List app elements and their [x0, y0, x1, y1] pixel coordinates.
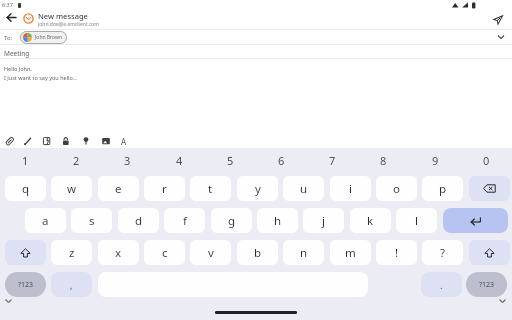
button[interactable] — [469, 240, 510, 265]
button[interactable]: 2 — [51, 150, 102, 170]
button[interactable]: o — [376, 176, 417, 201]
staticText: f — [183, 213, 187, 229]
button[interactable]: 0 — [461, 150, 512, 170]
button[interactable]: z — [51, 240, 92, 265]
staticText: v — [208, 245, 214, 261]
button[interactable]: t — [190, 176, 231, 201]
staticText: , — [70, 279, 73, 291]
button[interactable] — [469, 176, 510, 201]
staticText: w — [67, 181, 77, 197]
button[interactable]: 3 — [102, 150, 153, 170]
staticText: m — [345, 245, 356, 261]
staticText: To: — [4, 34, 13, 42]
button[interactable]: l — [396, 208, 437, 233]
staticText: 9 — [432, 153, 439, 168]
button[interactable]: n — [283, 240, 324, 265]
staticText: New message — [38, 11, 88, 21]
staticText: k — [367, 213, 374, 229]
button[interactable] — [40, 134, 54, 148]
button[interactable]: ?123 — [466, 272, 507, 297]
staticText: x — [115, 245, 122, 261]
staticText: A — [121, 136, 127, 147]
button[interactable] — [59, 134, 73, 148]
staticText: j — [322, 213, 325, 229]
button[interactable]: q — [5, 176, 46, 201]
button[interactable]: A — [117, 134, 131, 148]
button[interactable]: i — [330, 176, 371, 201]
button[interactable] — [2, 9, 22, 26]
button[interactable] — [79, 134, 93, 148]
button[interactable]: ! — [376, 240, 417, 265]
staticText: 0 — [483, 153, 490, 168]
button[interactable]: a — [25, 208, 66, 233]
button[interactable]: 7 — [307, 150, 358, 170]
button[interactable]: 4 — [154, 150, 205, 170]
staticText: g — [228, 213, 236, 229]
button[interactable]: . — [421, 272, 462, 297]
button[interactable]: k — [350, 208, 391, 233]
button[interactable]: 6 — [256, 150, 307, 170]
button[interactable] — [5, 240, 46, 265]
staticText: a — [42, 213, 49, 229]
button[interactable]: 9 — [410, 150, 461, 170]
button[interactable]: p — [422, 176, 463, 201]
staticText: 8 — [380, 153, 387, 168]
button[interactable]: ?123 — [5, 272, 46, 297]
button[interactable]: r — [144, 176, 185, 201]
staticText: ! — [395, 245, 399, 261]
staticText: I Just want to say you hello... — [4, 74, 78, 81]
staticText: 3 — [124, 153, 131, 168]
button[interactable]: 1 — [0, 150, 51, 170]
button[interactable]: f — [164, 208, 205, 233]
staticText: d — [135, 213, 143, 229]
staticText: ? — [440, 245, 445, 261]
button[interactable]: 8 — [358, 150, 409, 170]
staticText: p — [439, 181, 447, 197]
button[interactable]: ? — [422, 240, 463, 265]
staticText: u — [300, 181, 308, 197]
button[interactable]: x — [98, 240, 139, 265]
button[interactable]: c — [144, 240, 185, 265]
staticText: Meeting — [4, 49, 30, 58]
staticText: z — [69, 245, 75, 261]
staticText: 7 — [329, 153, 336, 168]
button[interactable]: b — [237, 240, 278, 265]
button[interactable]: s — [71, 208, 112, 233]
staticText: . — [440, 279, 443, 291]
button[interactable]: y — [237, 176, 278, 201]
button[interactable] — [3, 134, 17, 148]
staticText: i — [349, 181, 352, 197]
staticText: ?123 — [18, 280, 34, 290]
staticText: john.doe@e.emclient.com — [38, 21, 100, 28]
staticText: y — [255, 181, 261, 197]
staticText: s — [89, 213, 95, 229]
button[interactable]: , — [51, 272, 92, 297]
staticText: r — [162, 181, 167, 197]
staticText: e — [115, 181, 122, 197]
button[interactable] — [99, 134, 113, 148]
button[interactable] — [21, 134, 35, 148]
staticText: 5 — [227, 153, 234, 168]
button[interactable]: w — [51, 176, 92, 201]
staticText: Hello John, — [4, 65, 32, 72]
button[interactable]: v — [190, 240, 231, 265]
staticText: q — [22, 181, 30, 197]
button[interactable] — [443, 208, 508, 233]
button[interactable]: d — [118, 208, 159, 233]
button[interactable]: m — [330, 240, 371, 265]
button[interactable]: g — [211, 208, 252, 233]
staticText: 1 — [22, 153, 29, 168]
staticText: 4 — [176, 153, 183, 168]
staticText: ?123 — [479, 280, 495, 290]
button[interactable]: u — [283, 176, 324, 201]
button[interactable] — [492, 12, 506, 26]
button[interactable]: John Brown — [20, 31, 67, 44]
button[interactable]: h — [257, 208, 298, 233]
staticText: n — [300, 245, 308, 261]
staticText: 6:37 — [2, 1, 13, 8]
staticText: h — [274, 213, 282, 229]
button[interactable]: 5 — [205, 150, 256, 170]
button[interactable]: e — [98, 176, 139, 201]
button[interactable]: j — [303, 208, 344, 233]
